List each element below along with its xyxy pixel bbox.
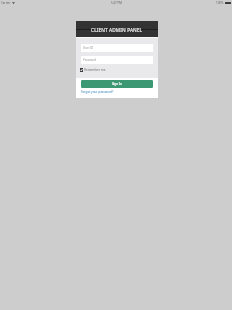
staticText: Remember me [84, 68, 106, 72]
other: Battery full [225, 2, 231, 4]
staticText: 5:27 PM [111, 1, 122, 5]
button[interactable]: Sign In [81, 80, 153, 88]
button[interactable]: Remember me [80, 68, 106, 72]
staticText: User ID [83, 46, 94, 50]
staticText: Forgot your password? [81, 90, 114, 94]
staticText: CLIENT ADMIN PANEL [91, 27, 143, 34]
staticText: 100% [216, 1, 224, 5]
staticText: Carrier [1, 1, 11, 5]
button[interactable]: Password [81, 56, 153, 64]
staticText: Sign In [112, 82, 122, 86]
staticText: Password [83, 58, 97, 62]
other: Wi-Fi signal [12, 2, 15, 4]
button[interactable]: Forgot your password? [81, 90, 114, 94]
button[interactable]: User ID [81, 44, 153, 52]
